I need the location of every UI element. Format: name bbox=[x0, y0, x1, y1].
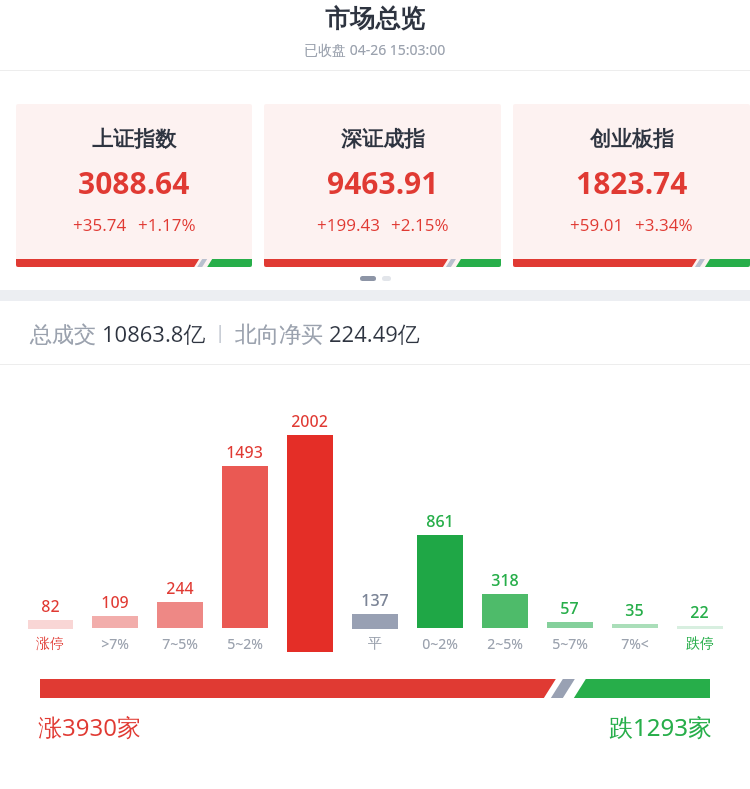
staticText: 已收盘 04-26 15:03:00 bbox=[304, 40, 446, 59]
staticText: 2~5% bbox=[487, 634, 523, 653]
staticText: | bbox=[206, 320, 235, 345]
staticText: +2.15% bbox=[391, 213, 449, 236]
staticText: >7% bbox=[101, 634, 129, 653]
staticText: 3088.64 bbox=[78, 162, 190, 203]
button[interactable]: 318 bbox=[472, 410, 537, 653]
staticText: +3.34% bbox=[635, 213, 693, 236]
staticText: 861 bbox=[426, 510, 454, 532]
button[interactable]: 跌1293家 bbox=[609, 710, 712, 743]
button[interactable]: 深证成指 bbox=[264, 104, 501, 267]
button[interactable]: 1493 bbox=[212, 410, 277, 653]
button[interactable]: 创业板指 bbox=[513, 104, 750, 267]
button[interactable]: 137 bbox=[342, 410, 407, 653]
other: Page 2 bbox=[382, 276, 391, 281]
staticText: 涨停 bbox=[36, 635, 64, 653]
staticText: 跌停 bbox=[686, 635, 714, 653]
staticText: 平 bbox=[368, 635, 382, 653]
staticText: 深证成指 bbox=[341, 126, 425, 152]
button[interactable]: 244 bbox=[147, 410, 212, 653]
staticText: 上证指数 bbox=[92, 126, 176, 152]
staticText: 35 bbox=[625, 599, 644, 621]
button[interactable]: 82 bbox=[18, 410, 82, 653]
staticText: 109 bbox=[101, 591, 129, 613]
staticText: 总成交 bbox=[30, 318, 102, 348]
staticText: 7%< bbox=[621, 634, 649, 653]
button[interactable]: 35 bbox=[602, 410, 667, 653]
staticText: 1823.74 bbox=[576, 162, 688, 203]
staticText: 22 bbox=[690, 601, 709, 623]
staticText: 10863.8亿 bbox=[102, 318, 206, 348]
staticText: 137 bbox=[361, 589, 389, 611]
staticText: 1493 bbox=[226, 441, 263, 463]
staticText: 7~5% bbox=[162, 634, 198, 653]
staticText: 5~7% bbox=[552, 634, 588, 653]
staticText: 224.49亿 bbox=[329, 318, 420, 348]
staticText: +1.17% bbox=[138, 213, 196, 236]
staticText: +199.43 bbox=[317, 213, 380, 236]
button[interactable]: 上证指数 bbox=[16, 104, 252, 267]
staticText: 0~2% bbox=[422, 634, 458, 653]
staticText: 5~2% bbox=[227, 634, 263, 653]
staticText: 北向净买 bbox=[235, 318, 329, 348]
staticText: 创业板指 bbox=[590, 126, 674, 152]
button[interactable]: 总成交 bbox=[0, 301, 750, 364]
button[interactable]: 2002 bbox=[277, 410, 342, 653]
button[interactable]: 22 bbox=[667, 410, 732, 653]
button[interactable]: 涨3930家 bbox=[38, 710, 141, 743]
staticText: 244 bbox=[166, 577, 194, 599]
button[interactable]: 109 bbox=[82, 410, 147, 653]
button[interactable]: 57 bbox=[537, 410, 602, 653]
staticText: 9463.91 bbox=[327, 162, 439, 203]
button[interactable]: 861 bbox=[407, 410, 472, 653]
staticText: 2002 bbox=[291, 410, 328, 432]
staticText: 市场总览 bbox=[325, 3, 425, 34]
other: Page 1 selected bbox=[360, 276, 376, 281]
staticText: 318 bbox=[491, 569, 519, 591]
staticText: +59.01 bbox=[570, 213, 624, 236]
staticText: +35.74 bbox=[73, 213, 127, 236]
staticText: 57 bbox=[560, 597, 579, 619]
staticText: 82 bbox=[41, 595, 60, 617]
